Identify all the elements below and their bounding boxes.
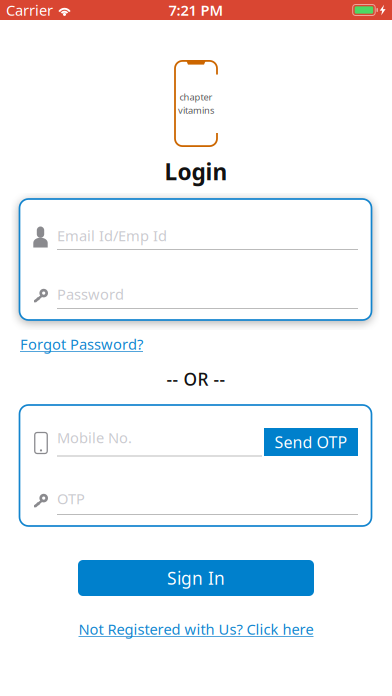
staticText: Send OTP: [274, 431, 347, 453]
staticText: Not Registered with Us? Click here: [78, 619, 313, 639]
button[interactable]: Send OTP: [264, 428, 358, 456]
staticText: Login: [164, 156, 227, 186]
staticText: Sign In: [167, 566, 225, 589]
staticText: Forgot Password?: [20, 334, 143, 354]
staticText: 7:21 PM: [168, 0, 223, 20]
staticText: Mobile No.: [57, 428, 132, 447]
staticText: OTP: [57, 489, 85, 508]
staticText: Carrier: [6, 0, 53, 20]
button[interactable]: Sign In: [78, 560, 314, 596]
staticText: chapter: [179, 91, 212, 103]
button[interactable]: Forgot Password?: [20, 335, 144, 353]
staticText: Email Id/Emp Id: [57, 226, 167, 245]
staticText: Password: [57, 284, 124, 304]
staticText: -- OR --: [166, 367, 225, 390]
staticText: vitamins: [178, 104, 214, 116]
button[interactable]: Not Registered with Us? Click here: [76, 620, 316, 638]
